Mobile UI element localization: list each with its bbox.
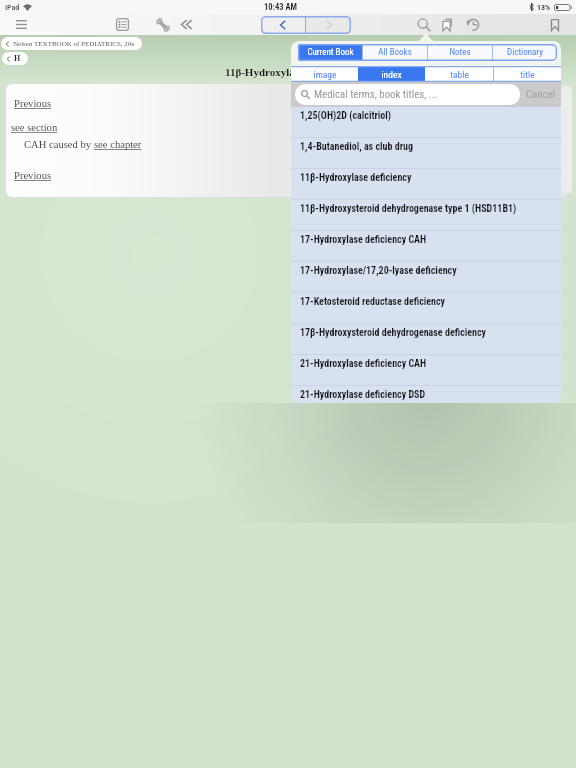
button[interactable]: index — [358, 66, 425, 82]
button[interactable]: 17β-Hydroxysteroid dehydrogenase deficie… — [291, 324, 561, 355]
button[interactable]: All Books — [362, 44, 427, 61]
button[interactable]: image — [291, 66, 358, 82]
staticText: 17-Hydroxylase deficiency CAH — [300, 234, 427, 246]
staticText: Nelsen TEXTBOOK of PEDIATRICS, 20e — [13, 40, 135, 48]
button[interactable]: 21-Hydroxylase deficiency CAH — [291, 355, 561, 386]
staticText: 11β-Hydroxylase deficiency — [300, 172, 412, 184]
staticText: iPad — [5, 3, 20, 12]
staticText: Cancel — [526, 88, 556, 101]
button[interactable]: Cancel — [520, 82, 561, 107]
button[interactable]: Menu — [10, 14, 32, 35]
button[interactable]: Current Book — [298, 44, 362, 61]
staticText: Notes — [449, 47, 471, 58]
button[interactable]: 11β-Hydroxylase deficiency — [291, 169, 561, 200]
button[interactable]: 1,4-Butanediol, as club drug — [291, 138, 561, 169]
button[interactable]: Notes — [427, 44, 492, 61]
button[interactable]: 11β-Hydroxysteroid dehydrogenase type 1 … — [291, 200, 561, 231]
button[interactable]: Previous — [14, 98, 52, 110]
button[interactable]: Nelsen TEXTBOOK of PEDIATRICS, 20e — [1, 37, 142, 50]
staticText: title — [520, 69, 535, 80]
button[interactable]: Back — [261, 16, 305, 34]
staticText: image — [313, 69, 337, 80]
staticText: table — [450, 69, 469, 80]
button[interactable]: see section — [11, 122, 58, 134]
staticText: 11β-Hydroxylase deficiency — [225, 66, 354, 78]
button[interactable]: 21-Hydroxylase deficiency DSD — [291, 386, 561, 403]
staticText: 17-Ketosteroid reductase deficiency — [300, 296, 446, 308]
button[interactable]: Search — [413, 14, 435, 35]
button[interactable]: title — [493, 66, 561, 82]
button[interactable]: Collapse — [175, 14, 197, 35]
button[interactable]: table — [425, 66, 493, 82]
button[interactable]: Medical terms, book titles, ... — [295, 84, 520, 105]
staticText: 17β-Hydroxysteroid dehydrogenase deficie… — [300, 327, 487, 339]
button[interactable]: Dictionary — [492, 44, 557, 61]
button[interactable]: History — [461, 14, 483, 35]
staticText: Current Book — [307, 47, 354, 58]
staticText: Medical terms, book titles, ... — [314, 88, 438, 101]
button[interactable]: Previous — [14, 170, 52, 182]
staticText: All Books — [378, 47, 412, 58]
button[interactable]: 17-Ketosteroid reductase deficiency — [291, 293, 561, 324]
staticText: index — [381, 69, 402, 80]
staticText: 10:43 AM — [264, 2, 297, 12]
button[interactable]: 17-Hydroxylase/17,20-lyase deficiency — [291, 262, 561, 293]
staticText: 1,25(OH)2D (calcitriol) — [300, 110, 392, 122]
staticText: H — [14, 54, 21, 63]
button[interactable]: H — [2, 52, 28, 65]
staticText: 21-Hydroxylase deficiency CAH — [300, 358, 427, 370]
button[interactable]: Table of contents — [111, 14, 133, 35]
staticText: 13% — [537, 3, 551, 12]
staticText: 1,4-Butanediol, as club drug — [300, 141, 413, 153]
button[interactable]: see chapter — [94, 139, 142, 151]
button[interactable]: 17-Hydroxylase deficiency CAH — [291, 231, 561, 262]
staticText: CAH caused by — [24, 139, 94, 151]
staticText: Dictionary — [507, 47, 543, 58]
button[interactable]: Add bookmark — [544, 14, 566, 35]
button[interactable]: 1,25(OH)2D (calcitriol) — [291, 107, 561, 138]
button[interactable]: Forward — [306, 16, 351, 34]
button[interactable]: Bone — [152, 14, 174, 35]
button[interactable]: Bookmarks — [436, 14, 458, 35]
staticText: 11β-Hydroxysteroid dehydrogenase type 1 … — [300, 203, 517, 215]
staticText: 21-Hydroxylase deficiency DSD — [300, 389, 426, 401]
staticText: 17-Hydroxylase/17,20-lyase deficiency — [300, 265, 457, 277]
